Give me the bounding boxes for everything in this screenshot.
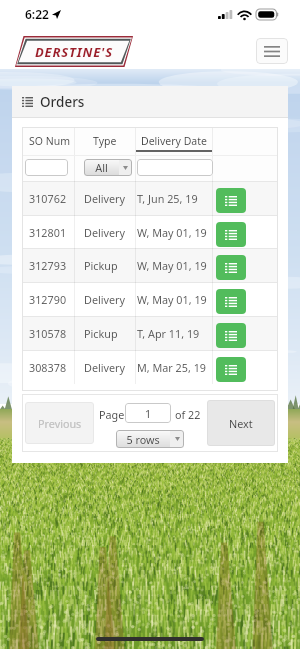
button[interactable]: View order 312801 (216, 222, 246, 247)
button[interactable]: 310578 (22, 316, 278, 350)
staticText: Previous (38, 416, 82, 431)
staticText: Delivery (84, 292, 126, 307)
staticText: W, May 01, 19 (137, 225, 207, 240)
staticText: 5 rows (116, 432, 170, 447)
button[interactable]: Next (207, 400, 275, 446)
button[interactable]: 1 (125, 403, 171, 423)
button[interactable]: Filter SO Num (25, 159, 68, 176)
button[interactable]: 312801 (22, 215, 278, 249)
button[interactable]: View order 310762 (216, 188, 246, 213)
button[interactable]: Filter Delivery Date (137, 159, 213, 176)
staticText: Delivery (84, 360, 126, 375)
staticText: Orders (40, 93, 85, 111)
staticText: W, May 01, 19 (137, 292, 207, 307)
button[interactable]: 310762 (22, 181, 278, 215)
staticText: 310762 (29, 191, 67, 206)
staticText: 312790 (29, 292, 67, 307)
staticText: 308378 (29, 360, 67, 375)
staticText: Type (93, 134, 117, 148)
staticText: All (84, 160, 119, 175)
button[interactable]: View order 312793 (216, 255, 246, 280)
button[interactable]: Menu (256, 38, 288, 64)
staticText: 312793 (29, 258, 67, 273)
staticText: Pickup (84, 326, 118, 341)
staticText: 6:22 (25, 6, 49, 22)
staticText: 312801 (29, 225, 67, 240)
staticText: Next (229, 416, 253, 431)
staticText: SO Num (29, 134, 70, 148)
staticText: W, May 01, 19 (137, 258, 207, 273)
button[interactable]: View order 312790 (216, 289, 246, 314)
staticText: T, Apr 11, 19 (137, 326, 200, 341)
button[interactable]: 308378 (22, 350, 278, 384)
staticText: of 22 (175, 407, 201, 422)
button[interactable]: 312793 (22, 248, 278, 282)
staticText: T, Jun 25, 19 (137, 191, 198, 206)
button[interactable]: Type (74, 127, 135, 155)
staticText: Delivery (84, 225, 126, 240)
button[interactable]: View order 310578 (216, 323, 246, 348)
staticText: Delivery (84, 191, 126, 206)
button[interactable]: Previous (25, 402, 94, 444)
button[interactable]: All (84, 159, 132, 176)
staticText: M, Mar 25, 19 (137, 360, 207, 375)
button[interactable]: 5 rows (116, 430, 184, 448)
button[interactable]: 312790 (22, 282, 278, 316)
button[interactable]: Derstine's home (15, 36, 133, 67)
button[interactable]: View order 308378 (216, 357, 246, 382)
staticText: 1 (145, 406, 152, 421)
button[interactable]: SO Num (22, 127, 74, 155)
staticText: Pickup (84, 258, 118, 273)
staticText: 310578 (29, 326, 67, 341)
staticText: Delivery Date (141, 134, 207, 148)
staticText: DERSTINE'S (35, 43, 113, 61)
staticText: Page (99, 407, 125, 422)
button[interactable]: Delivery Date (135, 127, 212, 155)
